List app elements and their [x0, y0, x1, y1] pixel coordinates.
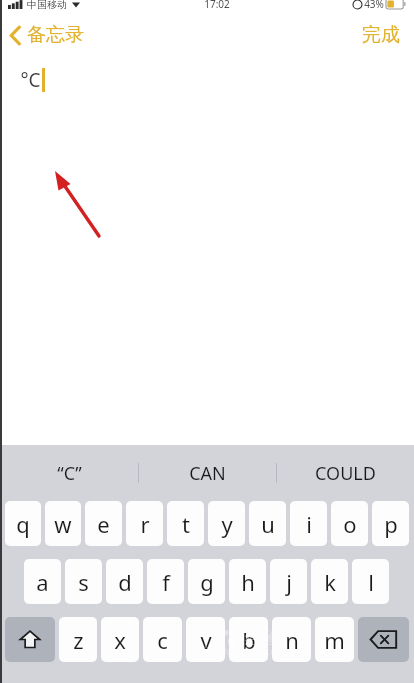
staticText: x: [114, 625, 126, 655]
staticText: 备忘录: [27, 23, 84, 47]
button[interactable]: COULD: [277, 445, 414, 501]
button[interactable]: c: [143, 617, 182, 662]
staticText: COULD: [315, 461, 376, 486]
staticText: t: [182, 509, 190, 539]
button[interactable]: w: [45, 501, 81, 546]
button[interactable]: g: [188, 559, 225, 604]
staticText: f: [162, 567, 170, 597]
staticText: v: [200, 625, 212, 655]
staticText: z: [73, 625, 84, 655]
staticText: “C”: [57, 461, 82, 486]
button[interactable]: l: [352, 559, 389, 604]
button[interactable]: h: [229, 559, 266, 604]
staticText: l: [368, 567, 374, 597]
button[interactable]: u: [249, 501, 286, 546]
button[interactable]: t: [167, 501, 204, 546]
staticText: o: [343, 509, 357, 539]
button[interactable]: q: [5, 501, 41, 546]
button[interactable]: p: [372, 501, 409, 546]
staticText: g: [200, 567, 214, 597]
staticText: y: [221, 509, 233, 539]
button[interactable]: CAN: [139, 445, 276, 501]
button[interactable]: k: [311, 559, 348, 604]
button[interactable]: y: [208, 501, 245, 546]
button[interactable]: e: [85, 501, 122, 546]
button[interactable]: m: [315, 617, 354, 662]
button[interactable]: j: [270, 559, 307, 604]
staticText: b: [242, 625, 256, 655]
staticText: 完成: [362, 23, 400, 47]
button[interactable]: f: [147, 559, 184, 604]
staticText: r: [140, 509, 150, 539]
staticText: CAN: [189, 461, 226, 486]
staticText: h: [241, 567, 255, 597]
button[interactable]: 备忘录: [0, 19, 96, 51]
button[interactable]: o: [331, 501, 368, 546]
staticText: m: [324, 625, 345, 655]
button[interactable]: n: [272, 617, 311, 662]
staticText: i: [306, 509, 312, 539]
button[interactable]: r: [126, 501, 163, 546]
button[interactable]: i: [290, 501, 327, 546]
staticText: 17:02: [204, 0, 230, 11]
staticText: e: [97, 509, 110, 539]
staticText: j: [286, 567, 292, 597]
button[interactable]: x: [101, 617, 139, 662]
staticText: 经验: [245, 628, 279, 649]
staticText: n: [285, 625, 299, 655]
button[interactable]: Shift: [5, 617, 55, 662]
button[interactable]: 完成: [348, 18, 414, 52]
button[interactable]: b: [229, 617, 268, 662]
staticText: q: [16, 509, 30, 539]
staticText: 中国移动: [27, 0, 67, 11]
staticText: w: [54, 509, 72, 539]
staticText: p: [384, 509, 398, 539]
staticText: d: [118, 567, 132, 597]
button[interactable]: v: [186, 617, 225, 662]
staticText: 43%: [364, 0, 384, 11]
staticText: k: [324, 567, 336, 597]
button[interactable]: a: [24, 559, 61, 604]
button[interactable]: Backspace: [358, 617, 409, 662]
button[interactable]: s: [65, 559, 102, 604]
button[interactable]: z: [59, 617, 97, 662]
staticText: jingyan.baidu.com: [204, 644, 291, 658]
button[interactable]: “C”: [0, 445, 138, 501]
staticText: c: [157, 625, 168, 655]
staticText: °C: [20, 67, 41, 93]
staticText: u: [261, 509, 275, 539]
staticText: s: [78, 567, 89, 597]
staticText: a: [36, 567, 49, 597]
button[interactable]: d: [106, 559, 143, 604]
